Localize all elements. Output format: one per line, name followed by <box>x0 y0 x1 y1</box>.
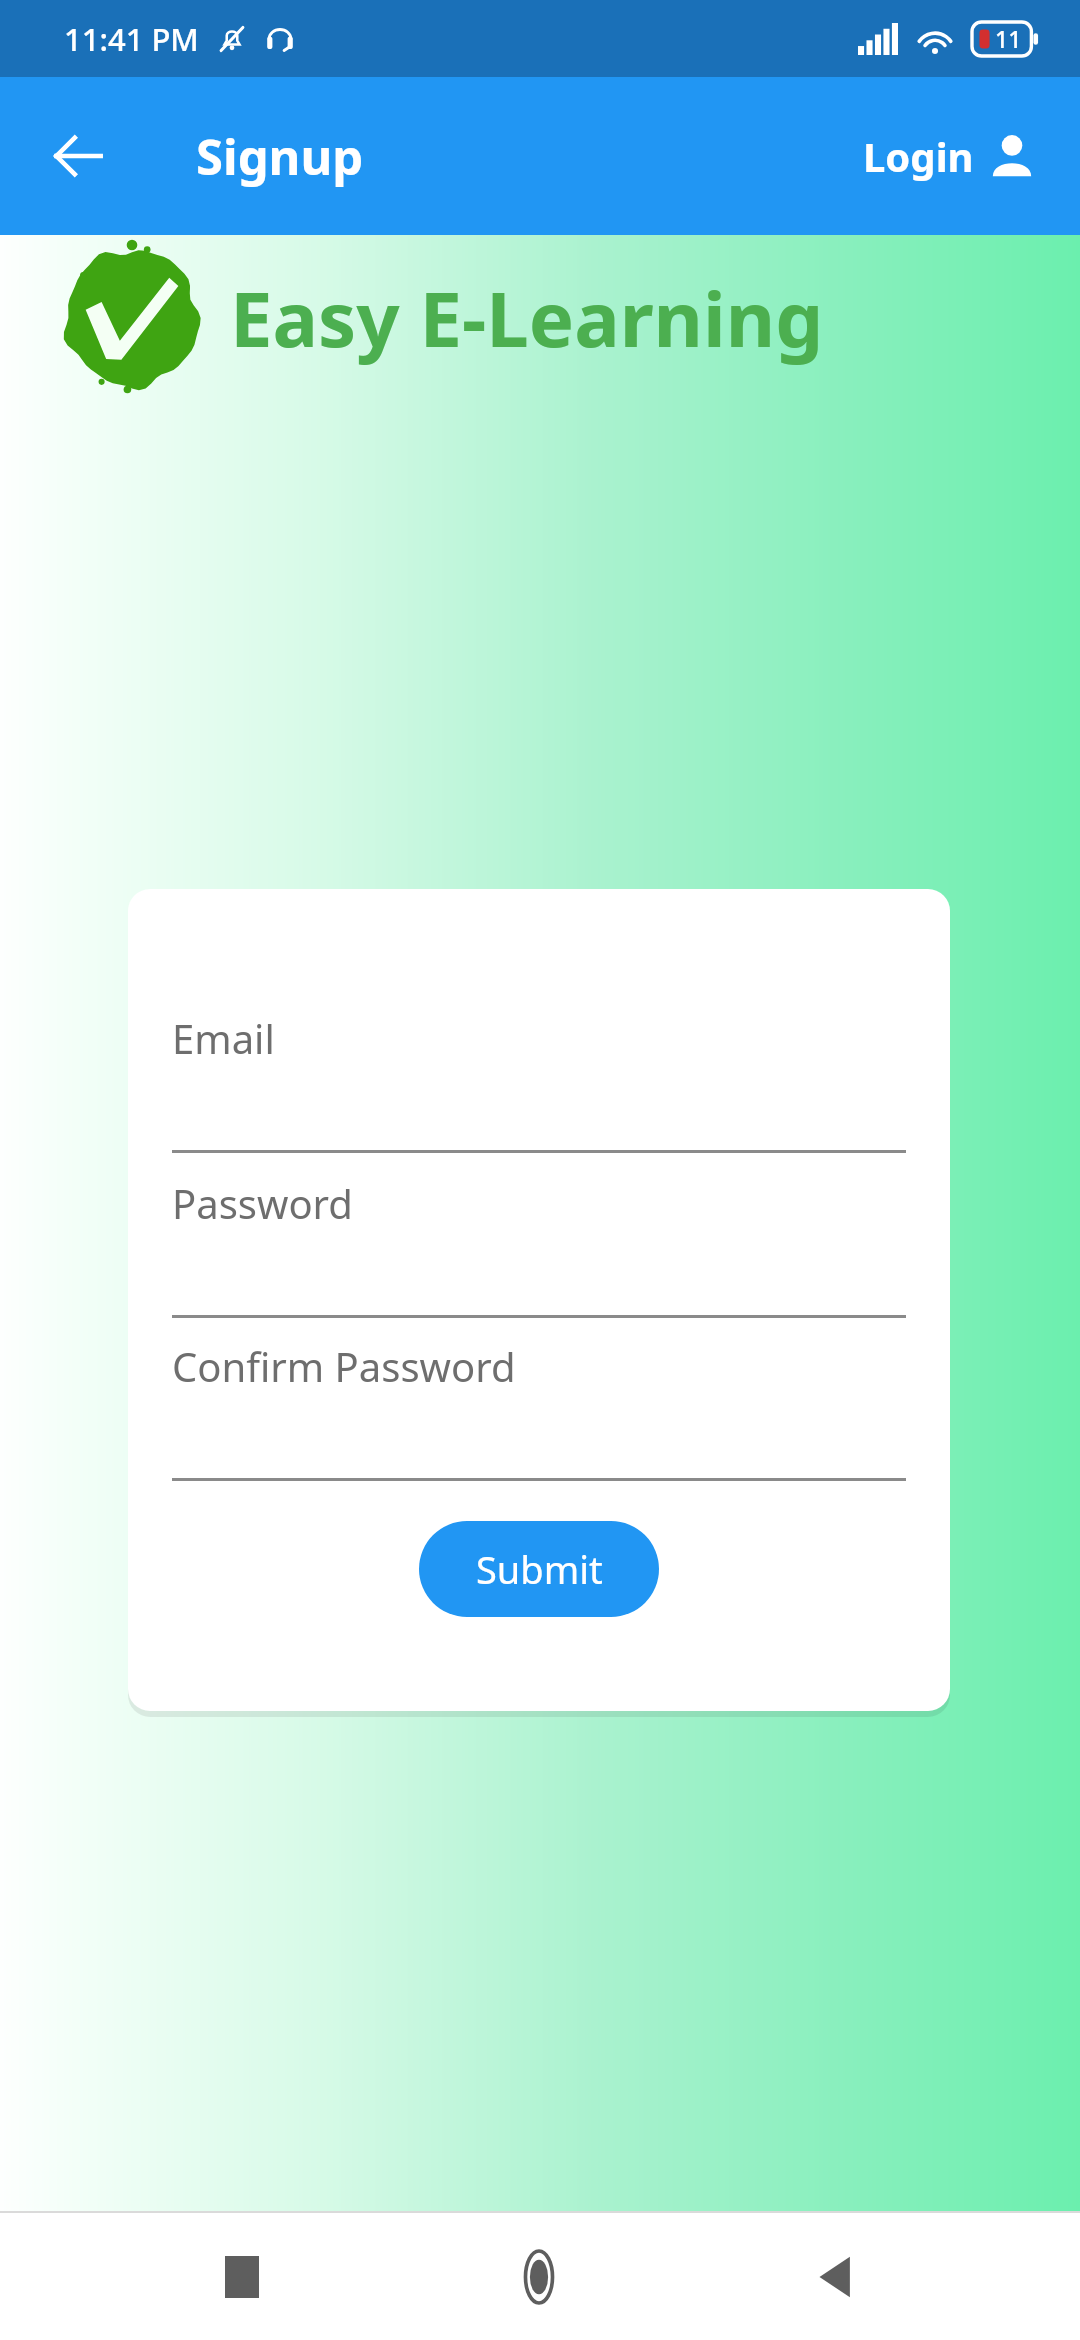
staticText: Signup <box>196 123 364 190</box>
button[interactable]: Home <box>484 2222 594 2332</box>
button[interactable]: Login <box>853 117 1046 195</box>
button[interactable]: Back <box>32 110 124 202</box>
staticText: Password <box>172 1176 353 1230</box>
staticText: Login <box>863 129 974 183</box>
staticText: Submit <box>476 1543 603 1595</box>
button[interactable]: Submit <box>419 1521 659 1617</box>
staticText: 11 <box>995 23 1022 54</box>
staticText: Confirm Password <box>172 1339 516 1393</box>
staticText: Email <box>172 1011 275 1065</box>
staticText: 11:41 PM <box>64 18 199 60</box>
button[interactable]: Password <box>172 1176 906 1318</box>
staticText: Easy E-Learning <box>230 266 824 370</box>
button[interactable]: Email <box>172 1011 906 1153</box>
button[interactable]: Recent apps <box>187 2222 297 2332</box>
button[interactable]: Confirm Password <box>172 1339 906 1481</box>
button[interactable]: Back <box>782 2222 892 2332</box>
